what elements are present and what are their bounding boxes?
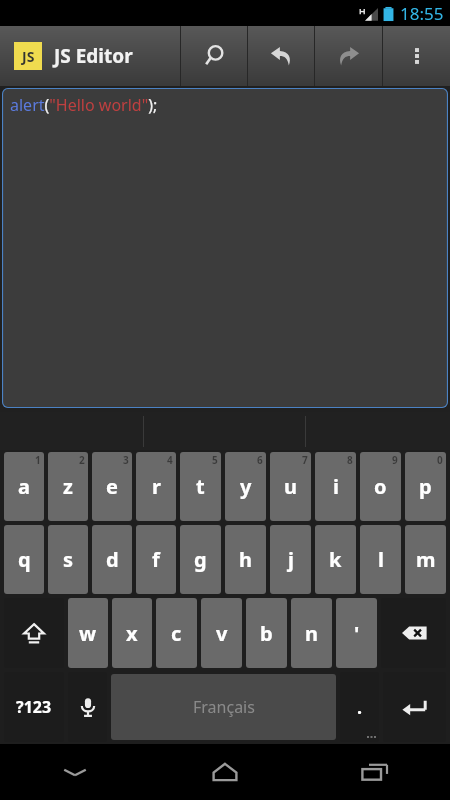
- button[interactable]: y: [225, 452, 266, 521]
- staticText: g: [194, 546, 207, 573]
- staticText: j: [288, 546, 294, 573]
- staticText: 4: [167, 453, 173, 467]
- staticText: 0: [437, 453, 443, 467]
- staticText: x: [126, 620, 138, 647]
- button[interactable]: l: [360, 525, 401, 594]
- staticText: 2: [79, 453, 85, 467]
- button[interactable]: z: [48, 452, 88, 521]
- button[interactable]: o: [360, 452, 401, 521]
- staticText: b: [260, 620, 273, 647]
- button[interactable]: i: [315, 452, 356, 521]
- staticText: r: [152, 473, 161, 500]
- button[interactable]: Recent apps: [300, 744, 450, 800]
- button[interactable]: Redo: [315, 26, 382, 86]
- button[interactable]: ?123: [4, 672, 64, 742]
- button[interactable]: Home: [150, 744, 300, 800]
- staticText: h: [239, 546, 252, 573]
- button[interactable]: h: [225, 525, 266, 594]
- button[interactable]: ': [336, 598, 377, 668]
- staticText: o: [374, 473, 387, 500]
- staticText: l: [378, 546, 384, 573]
- staticText: 18:55: [400, 2, 444, 25]
- button[interactable]: c: [156, 598, 197, 668]
- staticText: alert("Hello world");: [10, 94, 158, 116]
- staticText: 3: [123, 453, 129, 467]
- button[interactable]: g: [180, 525, 221, 594]
- staticText: z: [63, 473, 73, 500]
- button[interactable]: x: [112, 598, 152, 668]
- button[interactable]: Search: [181, 26, 247, 86]
- staticText: s: [63, 546, 74, 573]
- staticText: JS Editor: [54, 43, 133, 69]
- staticText: w: [79, 620, 97, 647]
- button[interactable]: .: [340, 672, 379, 742]
- button[interactable]: Shift: [4, 598, 64, 668]
- staticText: ?123: [16, 696, 52, 718]
- staticText: 1: [35, 453, 41, 467]
- button[interactable]: Backspace: [381, 598, 446, 668]
- staticText: k: [329, 546, 342, 573]
- button[interactable]: Enter: [383, 672, 446, 742]
- button[interactable]: Voice input: [68, 672, 107, 742]
- button[interactable]: e: [92, 452, 132, 521]
- button[interactable]: Undo: [248, 26, 314, 86]
- staticText: y: [240, 473, 252, 500]
- staticText: n: [305, 620, 318, 647]
- button[interactable]: Hide keyboard: [0, 744, 150, 800]
- button[interactable]: s: [48, 525, 88, 594]
- staticText: 9: [392, 453, 398, 467]
- button[interactable]: r: [136, 452, 176, 521]
- button[interactable]: b: [246, 598, 287, 668]
- staticText: ': [354, 620, 360, 647]
- button[interactable]: Français: [111, 674, 336, 740]
- button[interactable]: v: [201, 598, 242, 668]
- button[interactable]: JS: [0, 26, 180, 86]
- button[interactable]: t: [180, 452, 221, 521]
- button[interactable]: alert("Hello world");: [2, 88, 448, 408]
- button[interactable]: f: [136, 525, 176, 594]
- button[interactable]: k: [315, 525, 356, 594]
- staticText: 5: [212, 453, 218, 467]
- button[interactable]: w: [68, 598, 108, 668]
- staticText: 6: [257, 453, 263, 467]
- staticText: u: [284, 473, 297, 500]
- button[interactable]: d: [92, 525, 132, 594]
- staticText: i: [333, 473, 339, 500]
- staticText: a: [18, 473, 30, 500]
- staticText: Français: [193, 696, 255, 718]
- button[interactable]: n: [291, 598, 332, 668]
- button[interactable]: m: [405, 525, 446, 594]
- button[interactable]: u: [270, 452, 311, 521]
- staticText: v: [216, 620, 228, 647]
- staticText: JS: [22, 47, 35, 66]
- button[interactable]: p: [405, 452, 446, 521]
- staticText: m: [416, 546, 436, 573]
- button[interactable]: a: [4, 452, 44, 521]
- staticText: t: [196, 473, 205, 500]
- staticText: 7: [302, 453, 308, 467]
- staticText: e: [106, 473, 118, 500]
- staticText: c: [171, 620, 182, 647]
- button[interactable]: More options: [383, 26, 450, 86]
- staticText: q: [18, 546, 31, 573]
- button[interactable]: j: [270, 525, 311, 594]
- button[interactable]: q: [4, 525, 44, 594]
- staticText: p: [419, 473, 432, 500]
- staticText: d: [106, 546, 119, 573]
- staticText: 8: [347, 453, 353, 467]
- staticText: .: [357, 695, 363, 720]
- staticText: f: [152, 546, 160, 573]
